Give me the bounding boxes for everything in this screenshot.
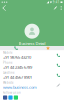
- staticText: Business Detail: [18, 41, 45, 46]
- staticText: 9:41: [53, 0, 60, 4]
- button[interactable]: Rate: [32, 46, 64, 50]
- button[interactable]: More options: [59, 5, 64, 11]
- staticText: Mobile: [3, 51, 13, 54]
- button[interactable]: Twitter: [8, 95, 13, 100]
- button[interactable]: WhatsApp: [14, 95, 18, 100]
- button[interactable]: Mobile: [0, 50, 64, 60]
- staticText: Website: [3, 81, 14, 84]
- button[interactable]: Edit: [52, 5, 59, 11]
- staticText: Follow us on: [3, 91, 21, 94]
- staticText: www.business.com: [3, 85, 37, 90]
- button[interactable]: Landline: [0, 70, 64, 80]
- button[interactable]: Call: [0, 46, 32, 50]
- button[interactable]: Website: [0, 80, 64, 90]
- button[interactable]: Phone: [0, 60, 64, 70]
- button[interactable]: Facebook: [3, 95, 7, 100]
- staticText: +91 44 2345 6789: [3, 65, 32, 70]
- staticText: Landline: [3, 71, 15, 74]
- button[interactable]: Back: [0, 4, 8, 12]
- staticText: Phone: [3, 61, 13, 64]
- staticText: +91 98765 43210: [3, 55, 31, 60]
- staticText: +91 44 4567 8901: [3, 75, 32, 80]
